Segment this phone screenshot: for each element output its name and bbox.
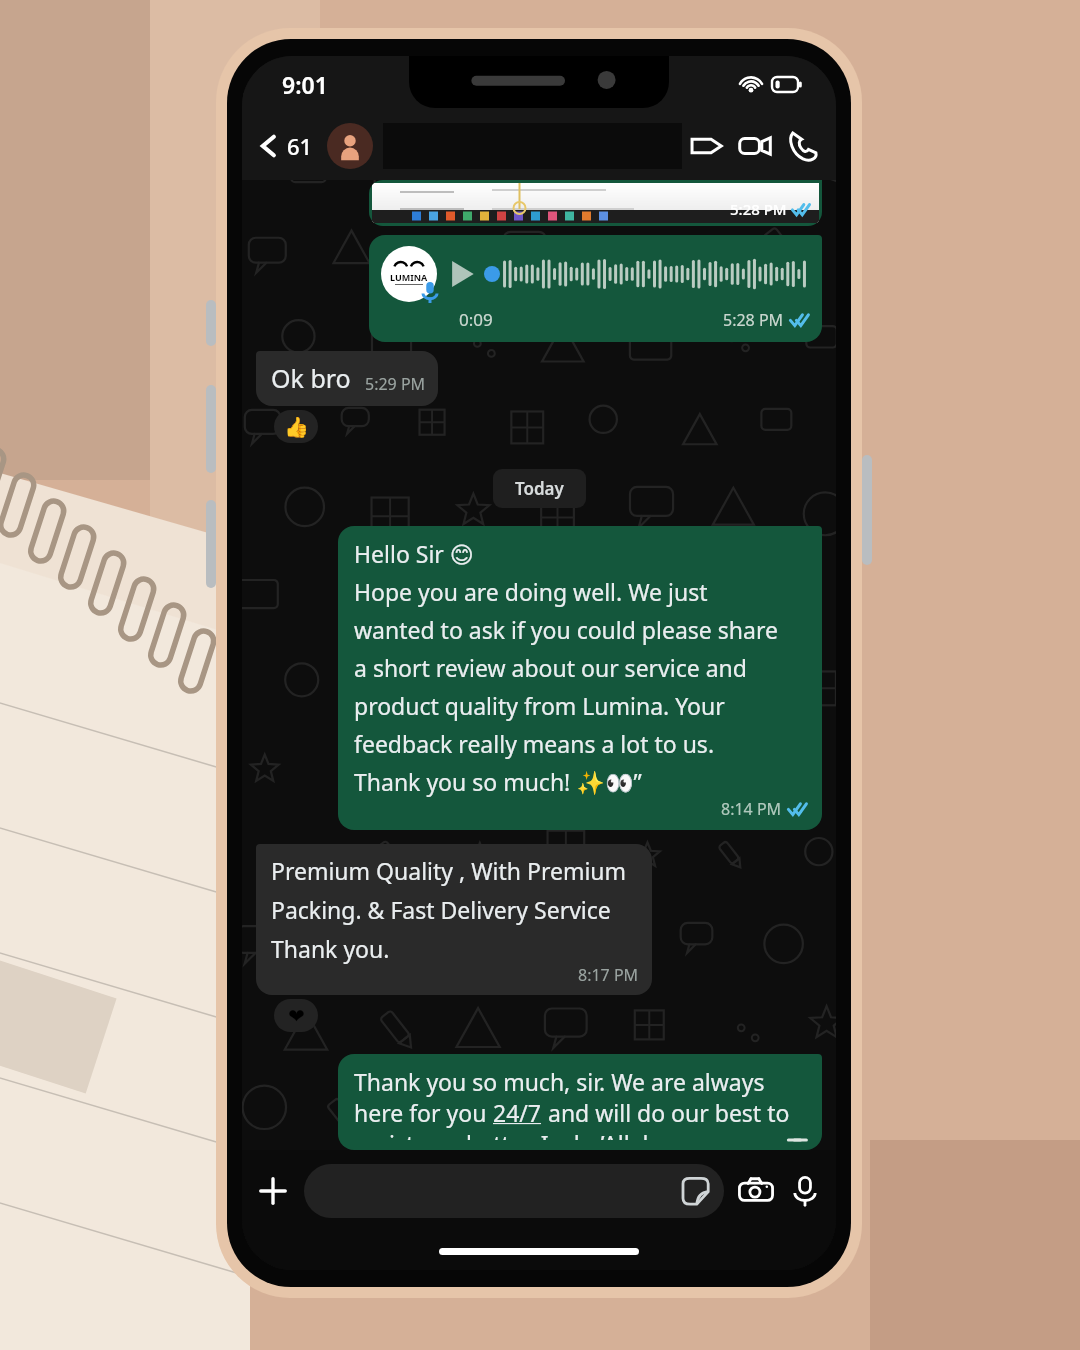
button[interactable]: LUMINA [369,235,822,342]
button[interactable]: Premium Quality , With Premium Packing. … [256,844,652,995]
button[interactable]: Today [493,469,586,508]
staticText: 24/7 [493,1097,542,1128]
staticText: 5:29 PM [365,373,426,395]
staticText: 👍 [284,415,309,438]
button[interactable]: Back [252,125,319,167]
button[interactable]: Hello Sir 😊 Hope you are doing well. We … [338,526,822,830]
staticText: 61 [287,131,313,161]
staticText: 8:14 PM [721,798,782,820]
button[interactable]: Labels [690,129,724,163]
staticText: Premium Quality , With Premium Packing. … [271,855,627,964]
button[interactable]: Ok bro [256,351,438,406]
button[interactable]: Profile photo [327,123,373,169]
button[interactable]: Camera [738,1173,774,1209]
button[interactable]: 5:28 PM [372,183,819,223]
staticText: Ok bro [271,361,351,395]
staticText: assist you better, Insha’Allah. [354,1128,663,1140]
staticText: Hello Sir 😊 Hope you are doing well. We … [354,538,778,798]
staticText: 9:01 [282,69,328,100]
staticText: 5:28 PM [723,309,784,331]
button[interactable]: Voice call [786,129,820,163]
button[interactable]: Stickers [304,1164,724,1218]
other: Play voice message [449,261,475,287]
staticText: and will do our best to [542,1097,790,1128]
staticText: 0:09 [459,308,493,331]
button[interactable]: ❤️ [274,999,318,1032]
button[interactable]: Thank you so much, sir. We are always [338,1054,822,1150]
staticText: Thank you so much, sir. We are always [354,1066,765,1097]
other: Stickers [680,1176,710,1206]
staticText: here for you [354,1097,493,1128]
staticText: LUMINA [390,271,428,283]
button[interactable]: Attach [256,1174,290,1208]
staticText: 8:17 PM [578,964,639,986]
button[interactable]: 👍 [274,410,318,443]
button[interactable]: Voice message [788,1174,822,1208]
other: Back [258,135,280,157]
button[interactable]: Video call [738,129,772,163]
staticText: ❤️ [288,1004,305,1027]
staticText: 5:28 PM [730,199,787,219]
staticText: Today [515,477,564,500]
